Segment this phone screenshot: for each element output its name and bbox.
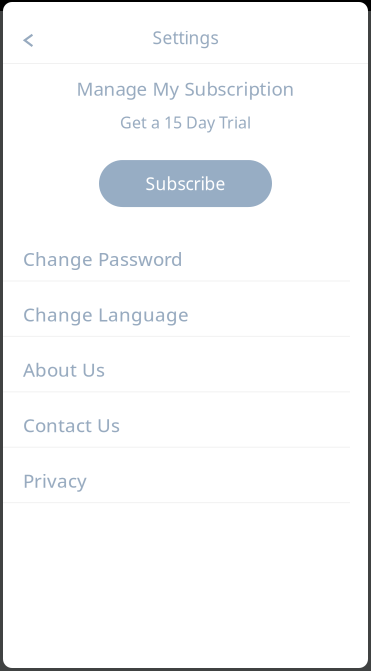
- button[interactable]: Change Language: [3, 281, 368, 337]
- button[interactable]: Change Password: [3, 226, 368, 281]
- button[interactable]: Subscribe: [99, 160, 272, 207]
- button[interactable]: Privacy: [3, 448, 368, 503]
- staticText: Get a 15 Day Trial: [120, 112, 251, 133]
- staticText: Privacy: [23, 468, 87, 493]
- staticText: Settings: [152, 26, 218, 49]
- staticText: Change Language: [23, 301, 189, 327]
- staticText: About Us: [23, 357, 105, 382]
- button[interactable]: Back: [3, 12, 51, 62]
- button[interactable]: About Us: [3, 337, 368, 392]
- staticText: Contact Us: [23, 412, 120, 438]
- staticText: Manage My Subscription: [76, 76, 294, 101]
- staticText: Subscribe: [145, 172, 225, 195]
- button[interactable]: Contact Us: [3, 392, 368, 448]
- staticText: Change Password: [23, 246, 183, 271]
